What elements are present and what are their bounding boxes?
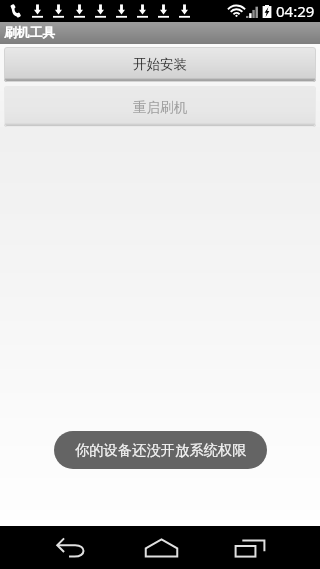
staticText: 重启刷机: [133, 99, 187, 116]
button[interactable]: Home: [116, 526, 206, 569]
staticText: 刷机工具: [4, 25, 56, 41]
button[interactable]: Recents: [205, 526, 295, 569]
staticText: 开始安装: [133, 56, 187, 73]
staticText: 你的设备还没开放系统权限: [75, 441, 247, 459]
staticText: 04:29: [276, 1, 315, 21]
button[interactable]: Back: [26, 526, 116, 569]
button[interactable]: 开始安装: [4, 47, 316, 82]
button[interactable]: 重启刷机: [4, 86, 316, 127]
